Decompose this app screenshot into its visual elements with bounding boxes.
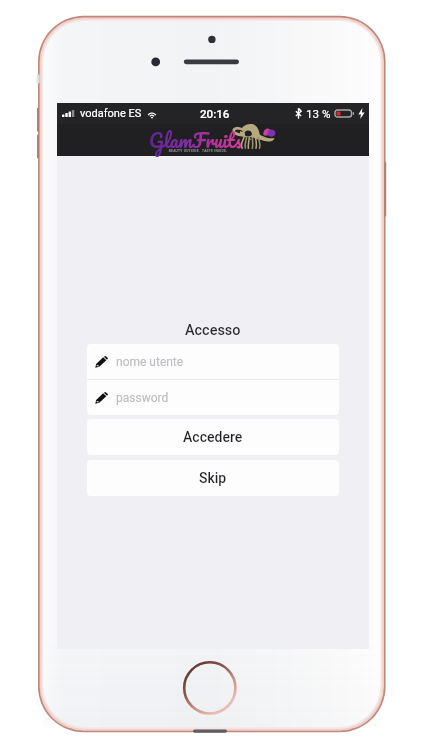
staticText: Accesso [185,322,241,339]
staticText: GlamFruits [149,124,242,156]
button[interactable]: GlamFruits [57,124,369,156]
other: Battery 13 percent [334,109,355,118]
staticText: Skip [199,470,227,486]
other: Edit [95,356,108,368]
button[interactable]: Edit [87,344,339,379]
other: Wi-Fi [147,110,157,118]
staticText: vodafone ES [80,107,142,120]
staticText: Accedere [183,429,243,445]
staticText: 13 % [306,107,331,121]
button[interactable]: Skip [87,460,339,496]
staticText: password [116,391,169,405]
button[interactable]: Edit [87,380,339,415]
staticText: 20:16 [200,107,230,121]
other: Edit [95,392,108,404]
staticText: BEAUTY OUTSIDE. TASTE INSIDE. [167,149,229,153]
staticText: nome utente [116,355,184,369]
button[interactable]: Accedere [87,419,339,455]
